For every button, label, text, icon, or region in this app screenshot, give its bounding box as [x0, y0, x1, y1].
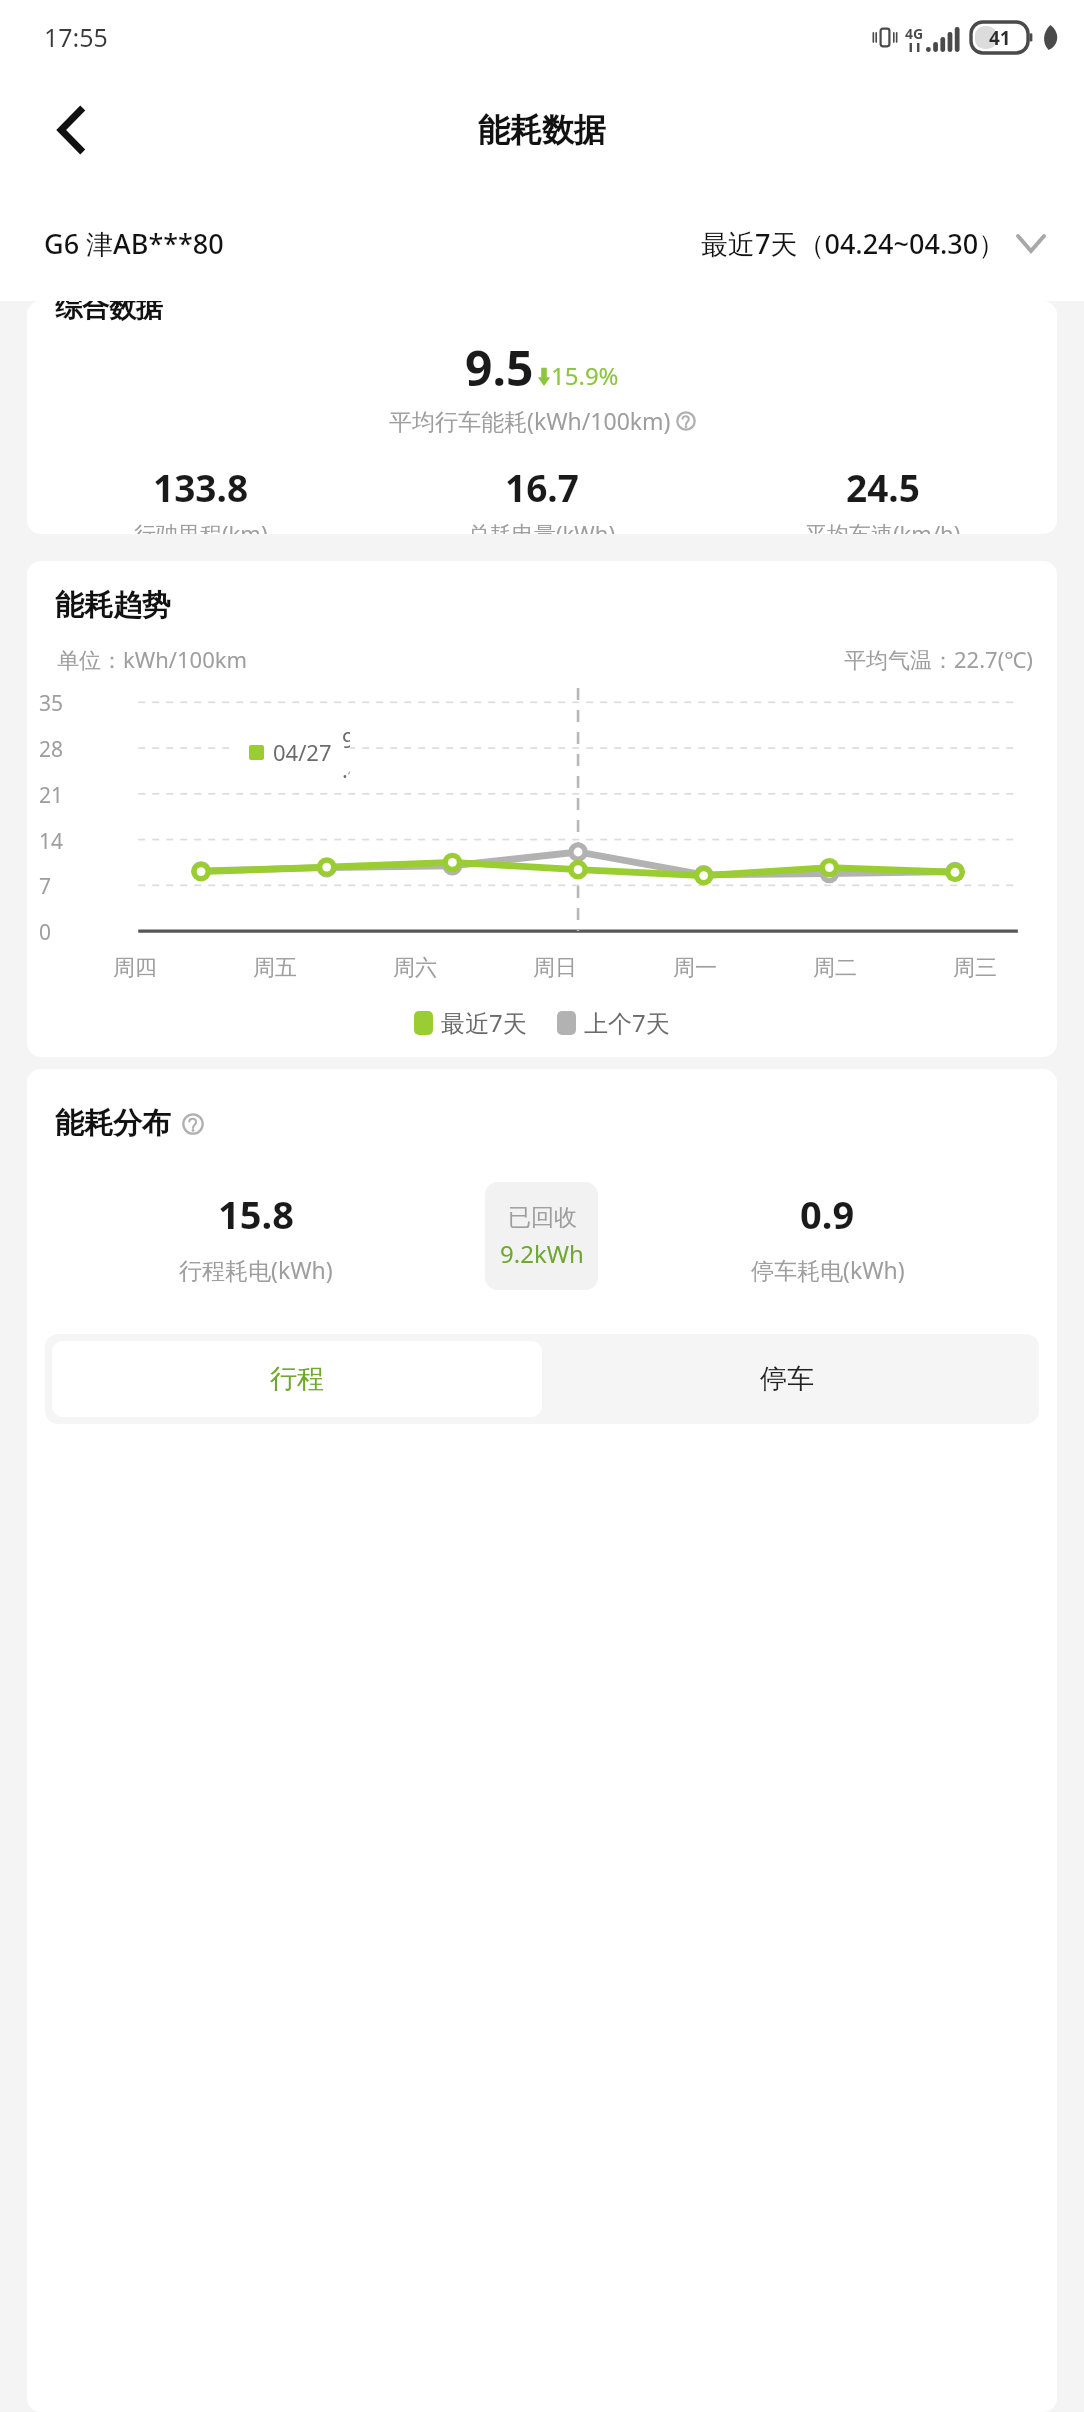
staticText: 4G: [905, 24, 924, 43]
staticText: 24.5: [846, 462, 920, 512]
staticText: 最近7天（04.24~04.30）: [701, 225, 1006, 262]
staticText: 15.8: [218, 1188, 294, 1240]
staticText: 133.8: [153, 462, 249, 512]
staticText: 已回收: [508, 1203, 577, 1232]
staticText: 能耗分布: [55, 1105, 171, 1142]
staticText: 9.5: [465, 335, 534, 400]
staticText: 28: [39, 735, 64, 764]
staticText: 行程耗电(kWh): [179, 1254, 333, 1285]
staticText: 41: [989, 25, 1011, 51]
staticText: 周一: [673, 954, 717, 982]
staticText: 9.2kWh: [500, 1237, 584, 1270]
staticText: 行驶里程(km): [134, 518, 268, 534]
staticText: G6 津AB***80: [44, 225, 224, 262]
staticText: 周四: [113, 954, 157, 982]
staticText: 0: [39, 918, 52, 947]
button[interactable]: 停车: [542, 1341, 1032, 1417]
staticText: 周三: [953, 954, 997, 982]
staticText: 9.4: [342, 724, 350, 780]
staticText: 上个7天: [584, 1006, 670, 1039]
staticText: 16.7: [505, 462, 579, 512]
staticText: 7: [39, 872, 52, 901]
staticText: 周日: [533, 954, 577, 982]
button[interactable]: 行程: [52, 1341, 542, 1417]
staticText: 平均行车能耗(kWh/100km): [389, 405, 671, 436]
staticText: 17:55: [44, 20, 108, 54]
staticText: 平均气温：22.7(℃): [844, 644, 1033, 674]
staticText: 35: [39, 689, 64, 718]
staticText: 行程: [270, 1362, 324, 1396]
staticText: 15.9%: [551, 359, 619, 392]
staticText: 04/27: [273, 737, 332, 767]
button[interactable]: Back: [40, 98, 104, 162]
staticText: 平均车速(km/h): [805, 518, 961, 534]
button[interactable]: 最近7天（04.24~04.30）: [701, 225, 1044, 262]
staticText: 单位：kWh/100km: [57, 644, 248, 674]
staticText: 周二: [813, 954, 857, 982]
staticText: 能耗数据: [478, 110, 606, 150]
staticText: 0.9: [800, 1188, 855, 1240]
staticText: 14: [39, 827, 64, 856]
staticText: 能耗趋势: [55, 587, 171, 624]
staticText: 停车耗电(kWh): [751, 1254, 905, 1285]
staticText: 21: [39, 781, 64, 810]
staticText: 总耗电量(kWh): [468, 518, 616, 534]
staticText: 停车: [760, 1362, 814, 1396]
staticText: 周五: [253, 954, 297, 982]
staticText: 最近7天: [441, 1006, 527, 1039]
staticText: 周六: [393, 954, 437, 982]
staticText: 综合数据: [55, 301, 163, 325]
